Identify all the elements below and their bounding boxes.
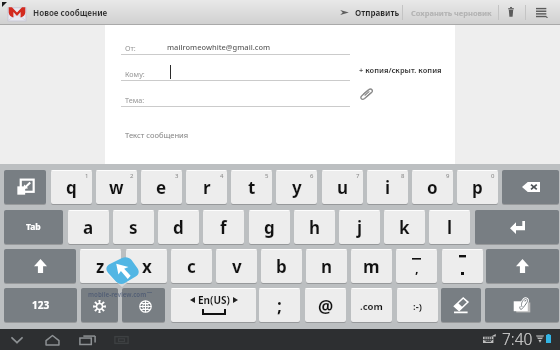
staticText: h — [309, 216, 321, 239]
staticText: En(US) — [198, 293, 230, 307]
staticText: z — [96, 255, 105, 278]
staticText: 7 — [356, 172, 360, 180]
staticText: o — [427, 176, 438, 199]
button[interactable]: g — [249, 210, 290, 244]
button[interactable]: Hide keyboard — [4, 170, 46, 204]
button[interactable]: f — [203, 210, 244, 244]
staticText: 2 — [130, 172, 134, 180]
button[interactable]: q — [51, 170, 92, 204]
staticText: l — [447, 216, 453, 239]
button[interactable]: v — [216, 249, 257, 283]
staticText: 123 — [32, 298, 50, 312]
button[interactable]: Enter — [475, 210, 559, 244]
button[interactable]: Navigate up — [8, 6, 26, 21]
button[interactable]: c — [171, 249, 212, 283]
button[interactable]: j — [339, 210, 380, 244]
button[interactable]: Сохранить черновик — [411, 8, 492, 18]
staticText: 8 — [401, 172, 405, 180]
staticText: Новое сообщение — [33, 7, 108, 18]
button[interactable]: w — [96, 170, 137, 204]
staticText: w — [109, 176, 124, 199]
button[interactable]: l — [429, 210, 470, 244]
button[interactable]: + копия/скрыт. копия — [359, 65, 442, 75]
staticText: Кому: — [125, 69, 145, 79]
button[interactable]: z — [80, 249, 121, 283]
button[interactable]: Home — [43, 333, 62, 347]
button[interactable]: Delete — [506, 6, 516, 18]
staticText: ; — [277, 294, 282, 317]
staticText: b — [276, 255, 287, 278]
button[interactable]: b — [261, 249, 302, 283]
button[interactable]: Input settings — [81, 288, 118, 322]
button[interactable]: p — [457, 170, 498, 204]
staticText: 3 — [175, 172, 179, 180]
staticText: Отправить — [355, 7, 400, 18]
button[interactable]: k — [384, 210, 425, 244]
staticText: n — [321, 255, 333, 278]
staticText: Сохранить черновик — [411, 8, 492, 18]
button[interactable]: Handwriting — [441, 288, 481, 322]
staticText: s — [129, 216, 138, 239]
staticText: a — [83, 216, 94, 239]
staticText: 4 — [220, 172, 224, 180]
button[interactable]: Shift — [486, 249, 559, 283]
button[interactable]: t — [231, 170, 272, 204]
staticText: 6 — [310, 172, 314, 180]
button[interactable]: o — [412, 170, 453, 204]
button[interactable]: a — [68, 210, 109, 244]
button[interactable]: Attach file — [359, 88, 373, 100]
button[interactable]: h — [294, 210, 335, 244]
staticText: f — [220, 216, 227, 239]
button[interactable]: :-) — [397, 288, 438, 322]
button[interactable]: y — [276, 170, 317, 204]
staticText: От: — [125, 43, 136, 53]
button[interactable]: Period — [442, 249, 483, 283]
staticText: mobile-review.com — [88, 290, 147, 298]
staticText: Tab — [26, 221, 41, 233]
button[interactable]: Backspace — [502, 170, 559, 204]
button[interactable]: u — [322, 170, 363, 204]
staticText: mailromeowhite@gmail.com — [167, 42, 271, 52]
staticText: 9 — [446, 172, 450, 180]
button[interactable]: r — [186, 170, 227, 204]
button[interactable]: e — [141, 170, 182, 204]
button[interactable]: i — [367, 170, 408, 204]
button[interactable]: @ — [305, 288, 346, 322]
staticText: x — [142, 255, 152, 278]
button[interactable]: m — [351, 249, 392, 283]
staticText: r — [203, 176, 211, 199]
staticText: k — [399, 216, 410, 239]
button[interactable]: Comma — [396, 249, 437, 283]
button[interactable]: .com — [351, 288, 392, 322]
staticText: Текст сообщения — [125, 130, 189, 140]
button[interactable]: Attach — [485, 288, 559, 322]
button[interactable]: 123 — [4, 288, 77, 322]
staticText: + копия/скрыт. копия — [359, 65, 442, 75]
staticText: j — [357, 216, 363, 239]
staticText: 0 — [491, 172, 495, 180]
button[interactable]: Recent apps — [78, 333, 97, 347]
staticText: d — [173, 216, 184, 239]
staticText: 5 — [265, 172, 269, 180]
button[interactable]: Space — [171, 288, 256, 322]
button[interactable]: Back — [8, 333, 26, 347]
staticText: 7:40 — [502, 328, 533, 349]
button[interactable]: Отправить — [340, 4, 400, 21]
button[interactable]: Tab — [4, 210, 63, 244]
button[interactable]: d — [158, 210, 199, 244]
staticText: v — [232, 255, 242, 278]
staticText: 1 — [85, 172, 89, 180]
staticText: :-) — [413, 300, 422, 313]
staticText: m — [363, 255, 380, 278]
staticText: @ — [318, 295, 334, 318]
button[interactable]: More options — [536, 7, 548, 18]
staticText: c — [187, 255, 196, 278]
button[interactable]: ; — [259, 288, 300, 322]
button[interactable]: n — [306, 249, 347, 283]
staticText: i — [385, 176, 391, 199]
button[interactable]: Shift — [4, 249, 76, 283]
button[interactable]: Change language — [122, 288, 165, 322]
button[interactable]: x — [126, 249, 167, 283]
button[interactable]: s — [113, 210, 154, 244]
staticText: t — [248, 176, 256, 199]
